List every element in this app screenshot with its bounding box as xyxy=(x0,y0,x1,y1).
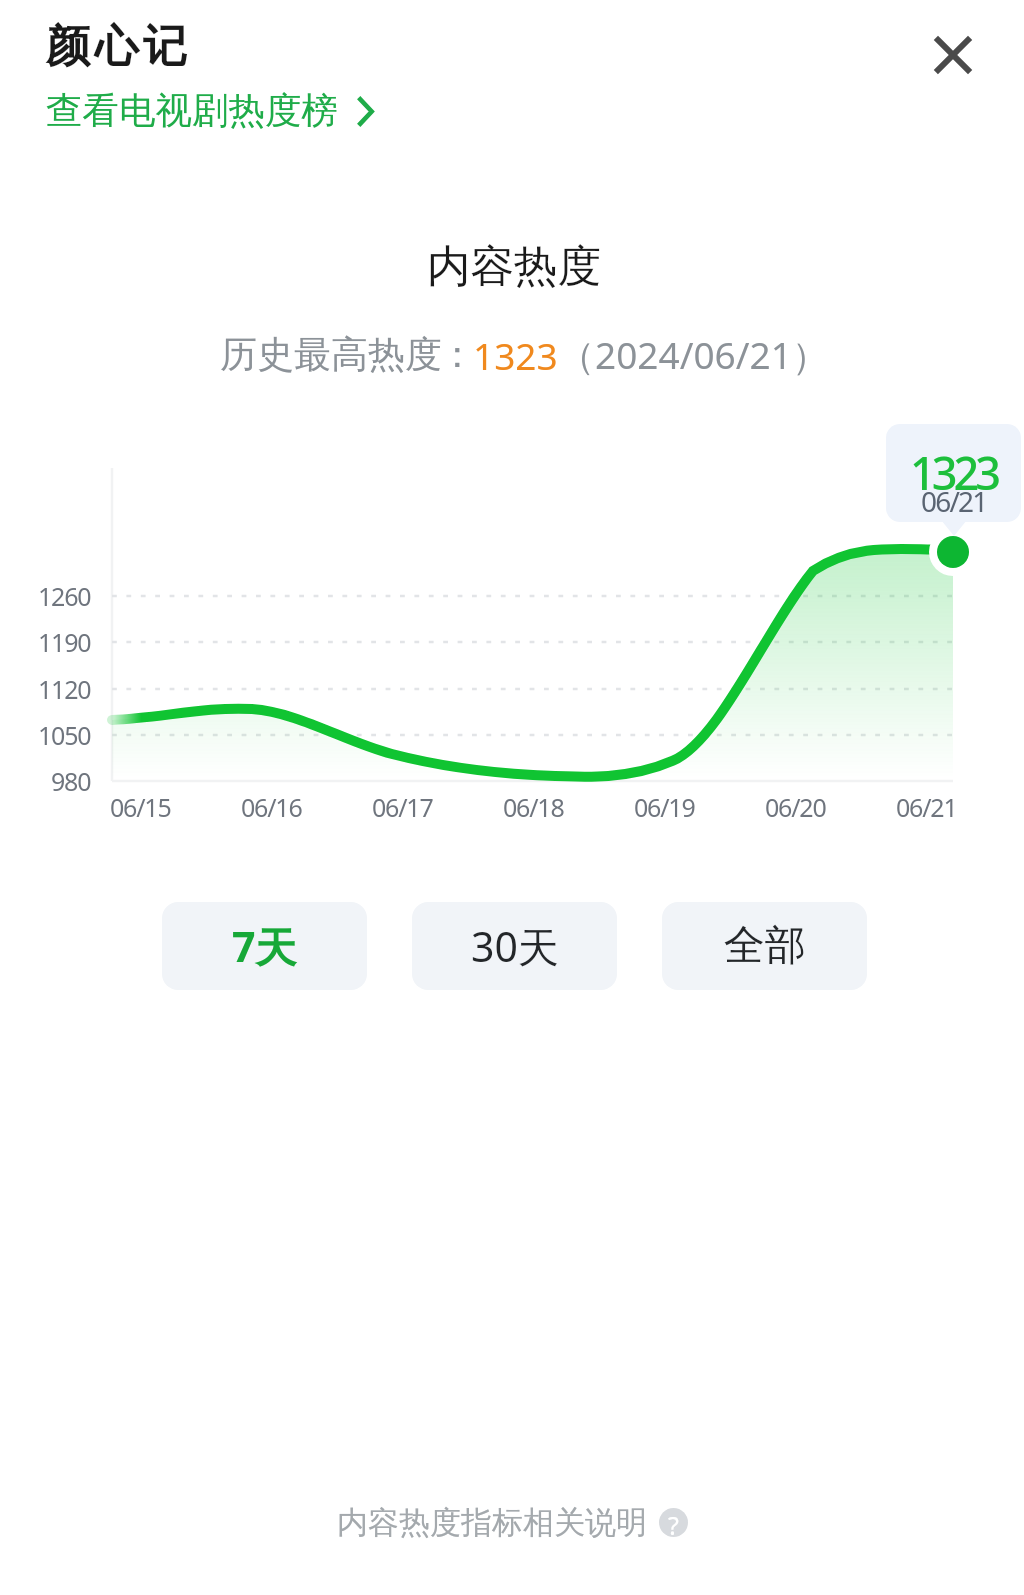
staticText: 06/15 xyxy=(110,790,171,824)
staticText: 1120 xyxy=(38,672,91,706)
staticText: 30天 xyxy=(471,918,559,974)
staticText: 980 xyxy=(51,764,91,798)
staticText: 颜心记 xyxy=(46,19,192,74)
staticText: 06/16 xyxy=(241,790,302,824)
button[interactable]: 内容热度指标相关说明 xyxy=(337,1503,688,1542)
staticText: 1050 xyxy=(38,718,91,752)
button[interactable]: 7天 xyxy=(162,902,367,990)
staticText: 1323 xyxy=(473,330,558,380)
button[interactable]: 查看电视剧热度榜 xyxy=(46,88,374,134)
staticText: 06/21 xyxy=(921,482,987,520)
staticText: ： xyxy=(442,331,473,378)
button[interactable]: 30天 xyxy=(412,902,617,990)
button[interactable]: Close xyxy=(910,12,996,98)
staticText: 06/18 xyxy=(503,790,564,824)
staticText: 06/17 xyxy=(372,790,433,824)
staticText: 历史最高热度 xyxy=(220,331,442,378)
staticText: 1190 xyxy=(38,625,91,659)
staticText: 06/20 xyxy=(765,790,826,824)
staticText: 内容热度指标相关说明 xyxy=(337,1503,647,1542)
staticText: 7天 xyxy=(232,918,297,974)
staticText: 内容热度 xyxy=(427,239,601,294)
staticText: 06/19 xyxy=(634,790,695,824)
staticText: 06/21 xyxy=(896,790,957,824)
staticText: 全部 xyxy=(724,920,806,972)
staticText: 1323 xyxy=(910,442,997,503)
staticText: 1260 xyxy=(38,579,91,613)
staticText: ? xyxy=(668,1508,679,1537)
button[interactable]: 全部 xyxy=(662,902,867,990)
staticText: （2024/06/21） xyxy=(558,329,829,380)
staticText: 查看电视剧热度榜 xyxy=(46,88,338,134)
